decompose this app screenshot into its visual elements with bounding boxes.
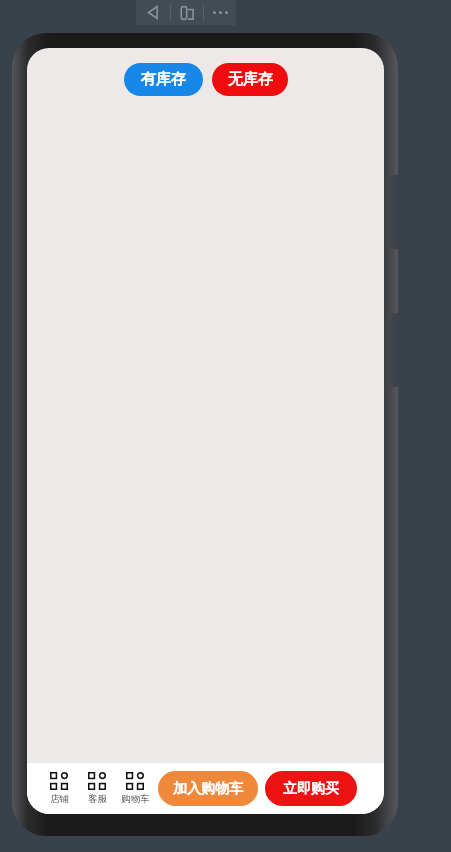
staticText: 购物车 bbox=[121, 793, 150, 805]
button[interactable]: 立即购买 bbox=[265, 771, 357, 806]
button[interactable]: 客服 bbox=[78, 772, 116, 805]
staticText: 无库存 bbox=[228, 70, 273, 89]
button[interactable]: 店铺 bbox=[40, 772, 78, 805]
button[interactable]: Back bbox=[136, 0, 170, 25]
staticText: 店铺 bbox=[50, 793, 69, 805]
button[interactable]: 有库存 bbox=[124, 63, 203, 96]
button[interactable]: 加入购物车 bbox=[158, 771, 258, 806]
button[interactable]: 无库存 bbox=[212, 63, 288, 96]
button[interactable]: Recent apps bbox=[171, 0, 203, 25]
staticText: 客服 bbox=[88, 793, 107, 805]
staticText: 加入购物车 bbox=[173, 780, 243, 798]
staticText: 立即购买 bbox=[283, 780, 339, 798]
button[interactable]: More options bbox=[204, 0, 236, 25]
button[interactable]: 购物车 bbox=[116, 772, 154, 805]
staticText: 有库存 bbox=[141, 70, 186, 89]
